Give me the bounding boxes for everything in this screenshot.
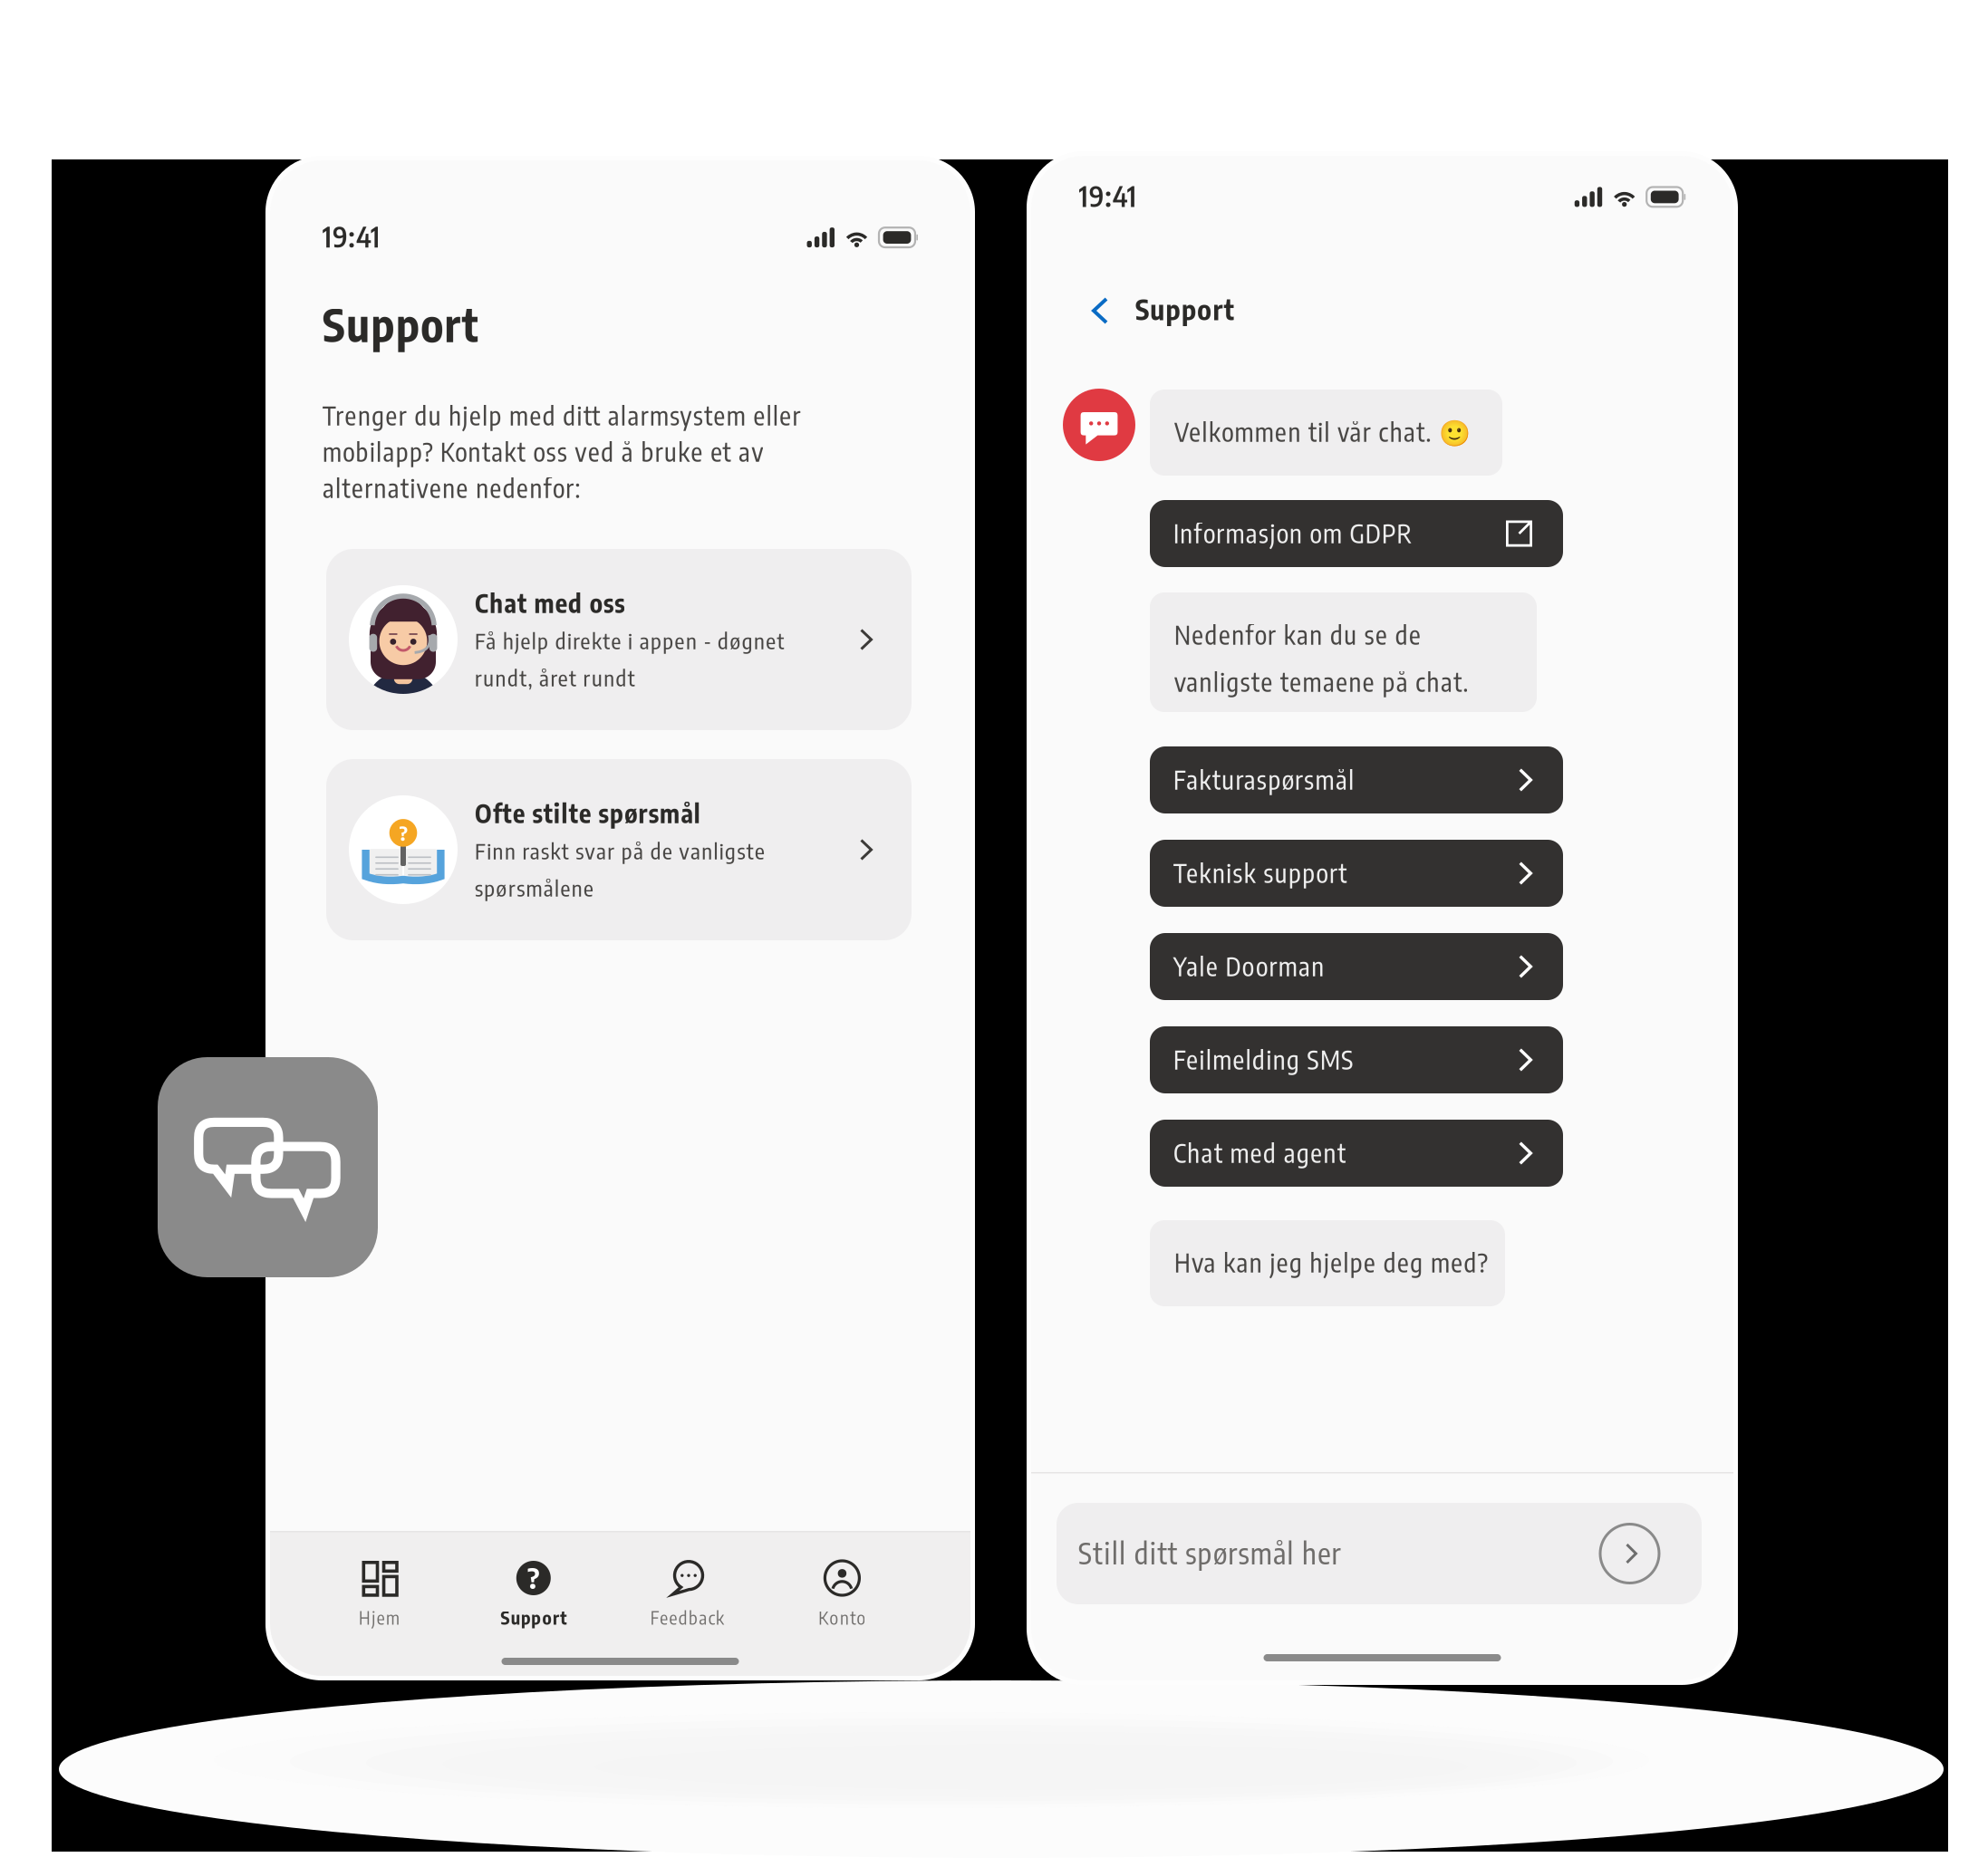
button[interactable]: Chat med agent [1150,1120,1563,1187]
button[interactable]: Chat app icon [158,1057,378,1277]
staticText: Support [1135,292,1234,326]
staticText: Feedback [650,1606,724,1629]
staticText: Nedenfor kan du se de vanligste temaene … [1174,619,1468,698]
button[interactable]: ? [483,1531,584,1638]
staticText: Informasjon om GDPR [1173,517,1411,549]
staticText: Fakturaspørsmål [1173,764,1354,795]
staticText: Chat med oss [475,587,625,619]
button[interactable]: Fakturaspørsmål [1150,746,1563,813]
staticText: Support [501,1606,566,1629]
staticText: Chat med agent [1173,1137,1345,1169]
staticText: ? [399,821,407,845]
button[interactable]: Still ditt spørsmål her [1057,1503,1702,1604]
button[interactable]: Yale Doorman [1150,933,1563,1000]
button[interactable]: Konto [791,1531,893,1638]
staticText: Konto [818,1606,866,1629]
button[interactable]: Feedback [636,1531,738,1638]
button[interactable]: Hjem [328,1531,430,1638]
button[interactable]: Chat med oss [326,549,912,730]
staticText: Få hjelp direkte i appen - døgnet rundt,… [475,627,784,691]
button[interactable]: Feilmelding SMS [1150,1026,1563,1093]
button[interactable]: Teknisk support [1150,840,1563,907]
button[interactable]: ? [326,759,912,940]
button[interactable]: Informasjon om GDPR [1150,500,1563,567]
staticText: Support [323,296,478,352]
staticText: Hjem [359,1606,400,1629]
button[interactable]: Support [1092,290,1300,332]
staticText: Hva kan jeg hjelpe deg med? [1174,1246,1488,1278]
staticText: Teknisk support [1173,857,1347,889]
staticText: Ofte stilte spørsmål [475,797,700,829]
staticText: Feilmelding SMS [1173,1044,1353,1075]
staticText: Trenger du hjelp med ditt alarmsystem el… [323,399,801,504]
staticText: Finn raskt svar på de vanligste spørsmål… [475,837,765,901]
staticText: ? [528,1560,539,1595]
staticText: 19:41 [323,219,380,254]
staticText: Still ditt spørsmål her [1078,1535,1341,1571]
staticText: Yale Doorman [1173,950,1324,982]
staticText: Velkommen til vår chat. 🙂 [1174,416,1471,448]
staticText: 19:41 [1079,178,1136,213]
